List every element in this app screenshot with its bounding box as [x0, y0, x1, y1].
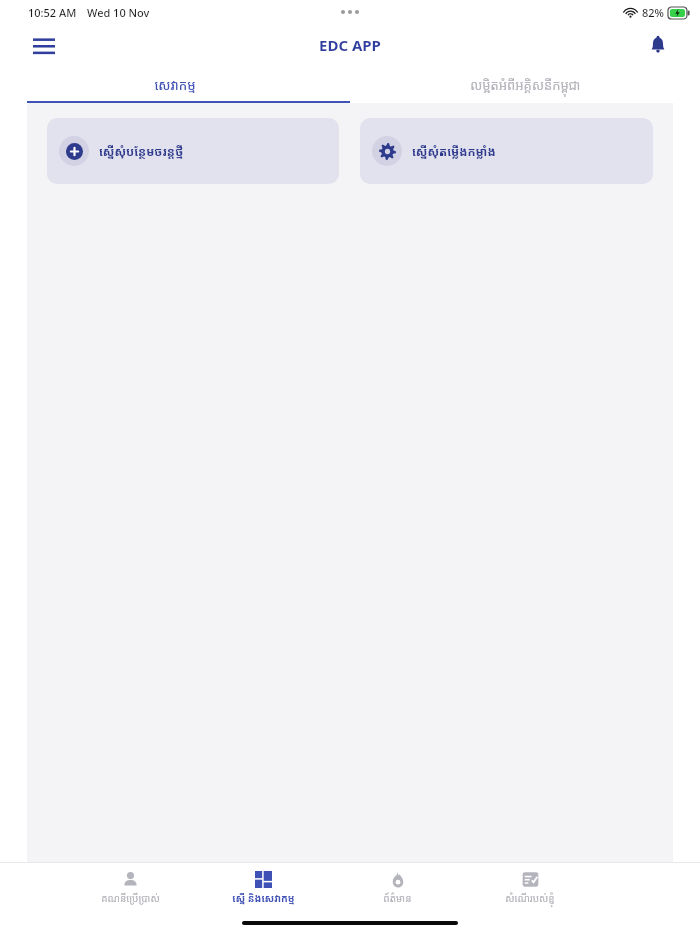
- button[interactable]: ស្នើសុំបន្ថែមចរន្តថ្មី: [47, 118, 339, 184]
- staticText: គណនីប្រើប្រាស់: [101, 891, 160, 905]
- button[interactable]: សេវាកម្ម: [0, 66, 350, 103]
- staticText: ស្នើសុំបន្ថែមចរន្តថ្មី: [99, 143, 184, 159]
- staticText: ព័ត៌មាន: [383, 891, 412, 905]
- staticText: សេវាកម្ម: [154, 76, 196, 94]
- staticText: Wed 10 Nov: [87, 5, 150, 20]
- button[interactable]: Notifications: [638, 25, 678, 65]
- button[interactable]: គណនីប្រើប្រាស់: [80, 863, 180, 912]
- staticText: EDC APP: [319, 35, 381, 55]
- staticText: ស្នើ និងសេវាកម្ម: [232, 891, 295, 905]
- staticText: 10:52 AM: [28, 5, 77, 20]
- button[interactable]: លម្អិតអំពីអគ្គិសនីកម្ពុជា: [350, 66, 700, 103]
- button[interactable]: ព័ត៌មាន: [347, 863, 447, 912]
- button[interactable]: ស្នើ និងសេវាកម្ម: [213, 863, 313, 912]
- button[interactable]: សំណើរបស់ខ្ញុំ: [480, 863, 580, 912]
- button[interactable]: Menu: [24, 25, 64, 65]
- staticText: លម្អិតអំពីអគ្គិសនីកម្ពុជា: [470, 76, 581, 94]
- staticText: 82%: [642, 5, 664, 20]
- button[interactable]: ស្នើសុំតម្លើងកម្លាំង: [360, 118, 653, 184]
- staticText: សំណើរបស់ខ្ញុំ: [505, 891, 555, 905]
- staticText: ស្នើសុំតម្លើងកម្លាំង: [412, 143, 496, 159]
